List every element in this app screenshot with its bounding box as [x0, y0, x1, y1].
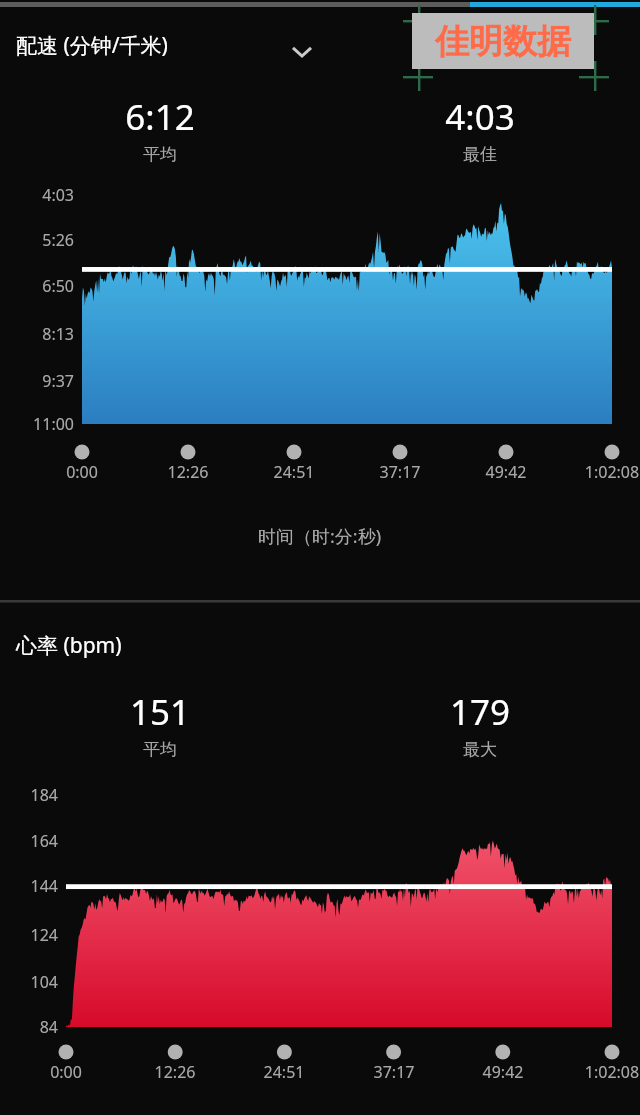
staticText: 1:02:08: [557, 461, 640, 483]
staticText: 49:42: [448, 1061, 558, 1083]
staticText: 9:37: [0, 370, 74, 392]
staticText: 24:51: [239, 461, 349, 483]
staticText: 184: [0, 784, 58, 806]
staticText: 49:42: [451, 461, 561, 483]
button[interactable]: Expand pace chart: [283, 33, 321, 71]
staticText: 配速 (分钟/千米): [16, 31, 168, 60]
staticText: 5:26: [0, 229, 74, 251]
button[interactable]: 心率 (bpm): [14, 629, 124, 662]
staticText: 24:51: [229, 1061, 339, 1083]
button[interactable]: 配速 (分钟/千米): [14, 29, 170, 62]
staticText: 37:17: [345, 461, 455, 483]
staticText: 最佳: [385, 144, 575, 165]
staticText: 8:13: [0, 323, 74, 345]
staticText: 4:03: [0, 184, 74, 206]
staticText: 179: [385, 688, 575, 736]
staticText: 心率 (bpm): [16, 631, 122, 660]
staticText: 时间（时:分:秒): [258, 524, 382, 549]
staticText: 0:00: [27, 461, 137, 483]
staticText: 124: [0, 924, 58, 946]
staticText: 最大: [385, 739, 575, 760]
staticText: 84: [0, 1016, 58, 1038]
staticText: 佳明数据: [435, 20, 571, 63]
staticText: 144: [0, 875, 58, 897]
staticText: 0:00: [11, 1061, 121, 1083]
staticText: 4:03: [385, 93, 575, 141]
staticText: 164: [0, 830, 58, 852]
staticText: 平均: [65, 144, 255, 165]
staticText: 104: [0, 971, 58, 993]
staticText: 平均: [65, 739, 255, 760]
staticText: 37:17: [339, 1061, 449, 1083]
staticText: 151: [65, 688, 255, 736]
staticText: 11:00: [0, 413, 74, 435]
staticText: 6:50: [0, 275, 74, 297]
staticText: 12:26: [133, 461, 243, 483]
staticText: 6:12: [65, 93, 255, 141]
staticText: 12:26: [120, 1061, 230, 1083]
staticText: 1:02:08: [557, 1061, 640, 1083]
